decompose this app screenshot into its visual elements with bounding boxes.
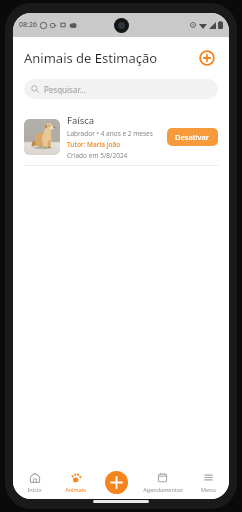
button[interactable]: Faísca	[13, 109, 229, 165]
staticText: Pesquisar...	[44, 84, 86, 95]
staticText: Tutor: Maria João	[67, 140, 121, 149]
button[interactable]: Agendamentos	[137, 465, 188, 499]
button[interactable]: Pesquisar...	[24, 79, 218, 99]
button[interactable]: Animais	[55, 465, 96, 499]
button[interactable]: Início	[13, 465, 55, 499]
staticText: Animais	[65, 486, 86, 493]
staticText: Criado em 5/8/2024	[67, 151, 128, 160]
staticText: Menu	[201, 486, 216, 493]
staticText: Desativar	[175, 132, 210, 142]
staticText: 08:26	[19, 20, 37, 30]
staticText: Início	[27, 486, 42, 493]
staticText: Agendamentos	[143, 486, 183, 493]
staticText: Faísca	[67, 114, 95, 127]
staticText: Labrador • 4 anos e 2 meses	[67, 129, 153, 138]
button[interactable]: Adicionar animal	[196, 47, 218, 69]
button[interactable]: Desativar	[167, 128, 218, 146]
staticText: Animais de Estimação	[24, 49, 158, 67]
button[interactable]: Adicionar	[105, 471, 128, 494]
button[interactable]: Menu	[188, 465, 229, 499]
